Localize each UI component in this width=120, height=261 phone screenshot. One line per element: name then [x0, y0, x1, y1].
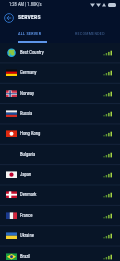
staticText: Germany	[20, 70, 37, 76]
staticText: Norway	[20, 91, 34, 97]
staticText: Brazil	[20, 254, 31, 260]
button[interactable]: Denmark	[0, 185, 120, 205]
staticText: Best Country	[20, 50, 44, 56]
staticText: 1:28 AM | 1.80K/s	[9, 2, 42, 7]
button[interactable]: Back	[2, 11, 15, 24]
button[interactable]: Germany	[0, 63, 120, 83]
button[interactable]: ALL SERVER	[0, 26, 60, 41]
staticText: RECOMMENDED	[75, 31, 105, 36]
button[interactable]: Ukraine	[0, 226, 120, 246]
staticText: Russia	[20, 111, 33, 117]
staticText: Japan	[20, 172, 32, 178]
button[interactable]: Hong Kong	[0, 124, 120, 144]
staticText: SERVERS	[18, 14, 41, 21]
button[interactable]: Best Country	[0, 43, 120, 63]
staticText: Bulgaria	[20, 152, 36, 158]
button[interactable]: Norway	[0, 84, 120, 104]
button[interactable]: Brazil	[0, 247, 120, 261]
button[interactable]: Russia	[0, 104, 120, 124]
button[interactable]: Japan	[0, 165, 120, 185]
staticText: ALL SERVER	[18, 31, 42, 36]
button[interactable]: RECOMMENDED	[60, 26, 120, 41]
staticText: Hong Kong	[20, 131, 41, 137]
button[interactable]: France	[0, 206, 120, 226]
button[interactable]: Bulgaria	[0, 145, 120, 165]
staticText: Ukraine	[20, 233, 34, 239]
staticText: Denmark	[20, 192, 37, 198]
staticText: France	[20, 213, 33, 219]
